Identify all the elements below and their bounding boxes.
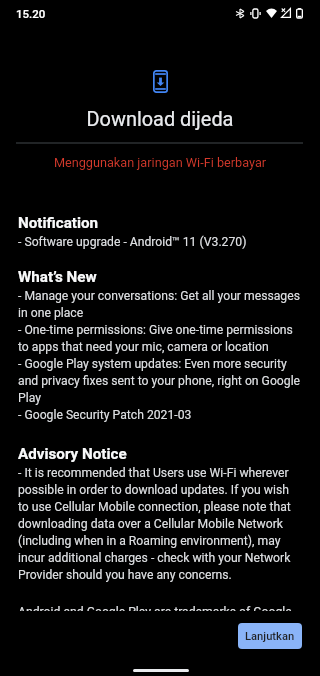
other: Ringer vibrate <box>250 9 261 18</box>
staticText: - It is recommended that Users use Wi-Fi… <box>18 466 302 582</box>
staticText: Notification <box>18 214 99 232</box>
staticText: Download dijeda <box>0 108 320 131</box>
other: Bluetooth on <box>236 9 244 18</box>
staticText: Menggunakan jaringan Wi-Fi berbayar <box>0 155 320 170</box>
other: System update <box>153 70 168 93</box>
staticText: - Manage your conversations: Get all you… <box>18 289 302 422</box>
staticText: What’s New <box>18 268 97 286</box>
staticText: Advisory Notice <box>18 445 127 463</box>
other: No mobile signal <box>281 8 291 18</box>
other: Battery low <box>296 8 303 18</box>
staticText: Android and Google Play are trademarks o… <box>18 605 292 611</box>
staticText: - Software upgrade - Android™ 11 (V3.270… <box>18 235 247 249</box>
button[interactable]: Lanjutkan <box>238 623 302 649</box>
other: Wi-Fi connected <box>266 8 277 18</box>
staticText: Lanjutkan <box>245 630 295 643</box>
staticText: 15.20 <box>16 7 46 20</box>
